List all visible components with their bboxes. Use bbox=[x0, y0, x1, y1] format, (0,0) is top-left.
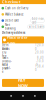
staticText: 20.00 bbox=[35, 51, 44, 54]
staticText: Checkout bbox=[2, 0, 21, 4]
staticText: Discount bbox=[2, 59, 12, 66]
staticText: Total payable bbox=[2, 63, 11, 74]
staticText: Net banking bbox=[5, 23, 16, 30]
button[interactable]: Net banking bbox=[0, 24, 46, 30]
staticText: -10.00 bbox=[36, 59, 44, 66]
staticText: 138.40 bbox=[35, 65, 44, 72]
staticText: 120.00 bbox=[35, 43, 44, 51]
staticText: Delivery fee bbox=[2, 47, 10, 58]
staticText: Delivery address bbox=[2, 31, 25, 34]
staticText: 8.40 bbox=[37, 56, 44, 59]
staticText: Taxes bbox=[2, 56, 8, 59]
staticText: Select bank bbox=[28, 25, 43, 28]
staticText: Cash on delivery bbox=[5, 6, 28, 10]
staticText: Debit card bbox=[5, 19, 19, 22]
staticText: Place order now bbox=[7, 35, 28, 45]
button[interactable]: Wallet balance bbox=[0, 11, 46, 17]
staticText: Wallet balance bbox=[5, 13, 24, 16]
button[interactable]: PAY NOW bbox=[0, 79, 46, 87]
staticText: Add new card bbox=[31, 17, 43, 24]
button[interactable]: Cash on delivery bbox=[0, 5, 46, 11]
staticText: PAY NOW bbox=[18, 78, 28, 88]
staticText: Item total bbox=[2, 43, 8, 51]
button[interactable]: Debit card bbox=[0, 17, 46, 24]
